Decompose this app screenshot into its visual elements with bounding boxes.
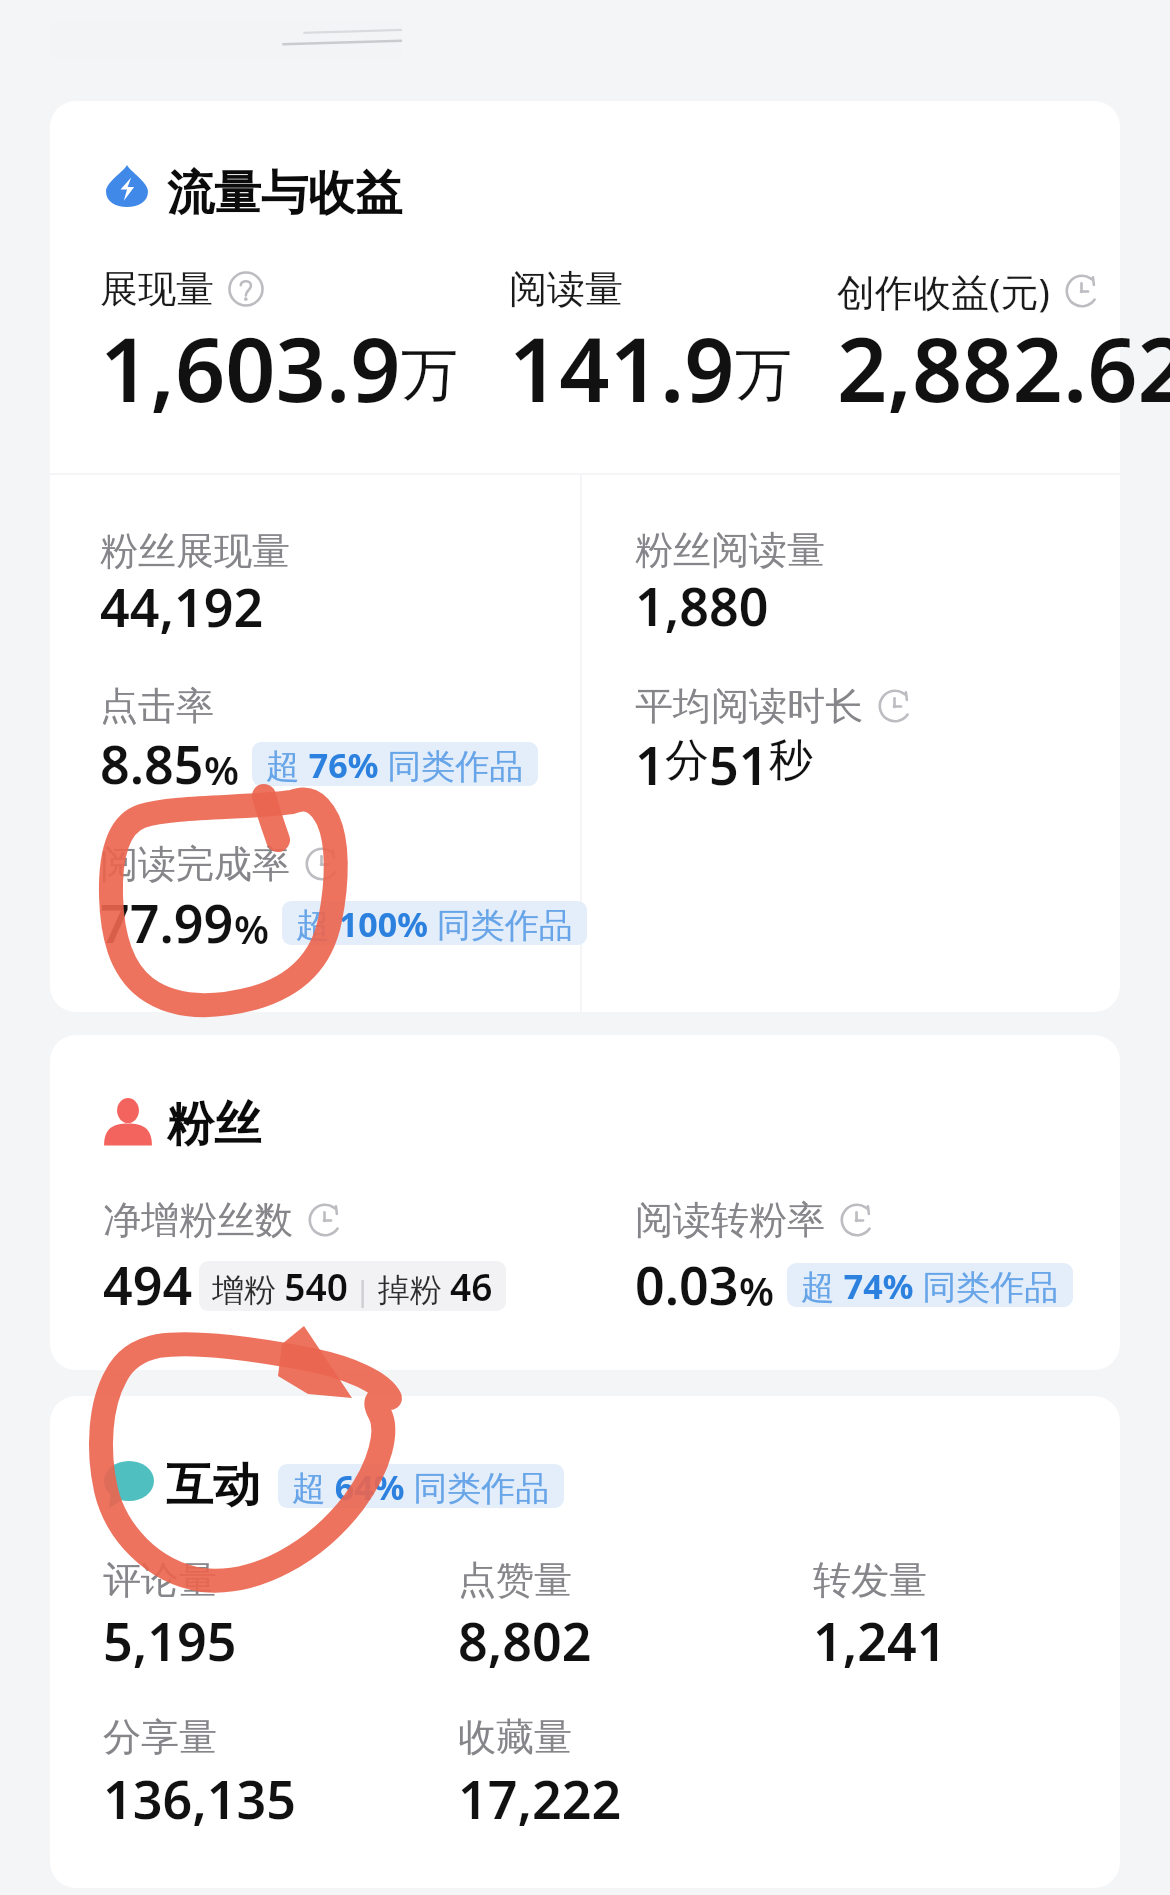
staticText: 秒 — [769, 733, 813, 788]
button[interactable] — [50, 101, 1120, 1012]
staticText: 136,135 — [103, 1763, 296, 1834]
button[interactable]: 增粉 540 | 掉粉 46 — [212, 1261, 493, 1311]
staticText: 1 — [635, 729, 665, 800]
staticText: 44,192 — [100, 571, 264, 642]
other: Traffic and revenue — [106, 165, 148, 207]
staticText: 万 — [401, 339, 458, 411]
staticText: 收藏量 — [458, 1713, 572, 1761]
staticText: % — [739, 1263, 774, 1317]
staticText: % — [204, 742, 239, 796]
staticText: 141.9 — [509, 308, 735, 428]
staticText: 0.03 — [635, 1249, 739, 1320]
staticText: 流量与收益 — [167, 164, 402, 223]
button[interactable]: 超 100% 同类作品 — [296, 901, 573, 945]
staticText: 点赞量 — [458, 1556, 572, 1604]
other: Fans — [102, 1096, 154, 1148]
staticText: 494 — [103, 1249, 193, 1320]
staticText: 1,880 — [635, 570, 769, 641]
button[interactable]: 超 74% 同类作品 — [801, 1263, 1059, 1307]
staticText: 超 74% 同类作品 — [801, 1263, 1059, 1307]
staticText: 点击率 — [100, 682, 214, 730]
staticText: 粉丝阅读量 — [635, 526, 825, 574]
staticText: 超 100% 同类作品 — [296, 901, 573, 945]
button[interactable] — [50, 1035, 1120, 1370]
staticText: 展现量 — [100, 265, 214, 313]
staticText: 粉丝展现量 — [100, 527, 290, 575]
staticText: 分享量 — [103, 1713, 217, 1761]
staticText: 1,603.9 — [100, 308, 401, 428]
other: Interactions — [104, 1459, 154, 1509]
staticText: 51 — [709, 729, 769, 800]
staticText: 创作收益(元) — [837, 265, 1050, 317]
staticText: 转发量 — [813, 1556, 927, 1604]
staticText: 2,882.62 — [837, 308, 1170, 428]
staticText: 阅读量 — [509, 265, 623, 313]
staticText: 评论量 — [103, 1556, 217, 1604]
staticText: % — [234, 901, 269, 955]
button[interactable] — [50, 1396, 1120, 1888]
staticText: 1,241 — [813, 1605, 947, 1676]
staticText: 77.99 — [100, 887, 234, 958]
staticText: 超 64% 同类作品 — [292, 1464, 550, 1508]
staticText: 阅读转粉率 — [635, 1196, 825, 1244]
button[interactable]: 超 64% 同类作品 — [292, 1464, 550, 1508]
staticText: 分 — [665, 733, 709, 788]
staticText: 平均阅读时长 — [635, 682, 863, 730]
staticText: 阅读完成率 — [100, 840, 290, 888]
staticText: 17,222 — [458, 1763, 622, 1834]
staticText: 5,195 — [103, 1605, 237, 1676]
staticText: 8.85 — [100, 728, 204, 799]
button[interactable]: 超 76% 同类作品 — [266, 742, 524, 786]
staticText: 8,802 — [458, 1605, 592, 1676]
staticText: 净增粉丝数 — [103, 1196, 293, 1244]
staticText: 超 76% 同类作品 — [266, 742, 524, 786]
staticText: 万 — [735, 339, 792, 411]
staticText: 增粉 540 | 掉粉 46 — [212, 1261, 493, 1311]
staticText: 粉丝 — [167, 1095, 261, 1154]
staticText: 互动 — [166, 1456, 260, 1515]
